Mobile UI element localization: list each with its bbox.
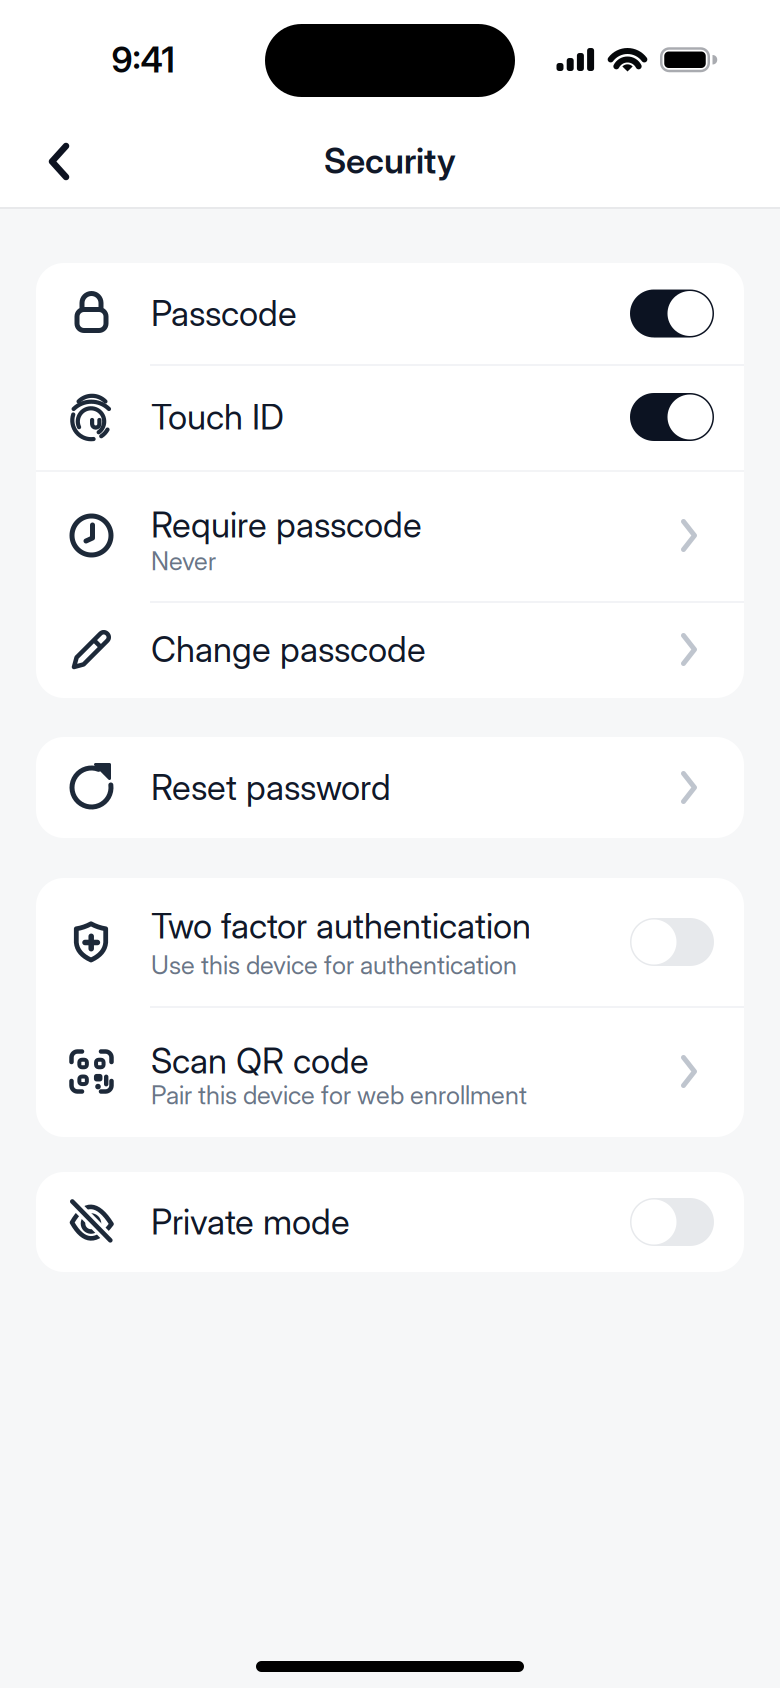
staticText: Pair this device for web enrollment bbox=[151, 1080, 527, 1110]
button[interactable]: Require passcode bbox=[36, 470, 744, 601]
button[interactable]: Reset password bbox=[36, 737, 744, 838]
staticText: Passcode bbox=[151, 293, 297, 334]
staticText: Touch ID bbox=[151, 397, 284, 437]
staticText: Reset password bbox=[151, 767, 391, 808]
staticText: Never bbox=[151, 546, 216, 576]
button[interactable]: Change passcode bbox=[36, 601, 744, 698]
button[interactable]: Two factor authentication bbox=[36, 878, 744, 1006]
button[interactable]: Touch ID bbox=[36, 364, 744, 470]
staticText: Two factor authentication bbox=[151, 906, 531, 946]
staticText: Private mode bbox=[151, 1202, 350, 1242]
button[interactable]: Passcode bbox=[36, 263, 744, 364]
staticText: Change passcode bbox=[151, 629, 426, 670]
staticText: Require passcode bbox=[151, 505, 422, 545]
staticText: Use this device for authentication bbox=[151, 950, 517, 980]
staticText: Scan QR code bbox=[151, 1041, 369, 1081]
button[interactable]: Private mode bbox=[36, 1172, 744, 1272]
staticText: 9:41 bbox=[111, 40, 174, 80]
button[interactable]: Back bbox=[29, 131, 89, 191]
staticText: Security bbox=[324, 141, 456, 181]
button[interactable]: Scan QR code bbox=[36, 1006, 744, 1137]
